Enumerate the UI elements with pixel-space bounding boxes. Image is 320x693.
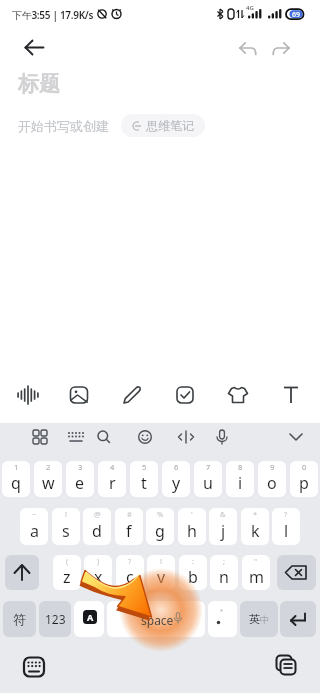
staticText: s xyxy=(62,520,70,542)
button[interactable] xyxy=(208,601,237,637)
button[interactable]: 0 xyxy=(290,461,318,497)
staticText: i xyxy=(238,472,243,494)
button[interactable] xyxy=(62,423,90,450)
button[interactable]: ( xyxy=(53,555,81,590)
button[interactable] xyxy=(131,423,159,450)
staticText: " xyxy=(254,556,258,566)
staticText: z xyxy=(63,566,71,588)
staticText: k xyxy=(251,520,260,542)
button[interactable] xyxy=(90,423,118,450)
button[interactable] xyxy=(270,651,302,683)
button[interactable] xyxy=(233,34,259,60)
button[interactable]: 9 xyxy=(258,461,286,497)
staticText: c xyxy=(126,566,134,588)
staticText: % xyxy=(157,509,164,519)
button[interactable] xyxy=(107,601,205,637)
button[interactable]: 123 xyxy=(39,601,71,637)
staticText: 8 xyxy=(238,462,243,472)
button[interactable]: ~ xyxy=(20,508,48,545)
button[interactable]: 5 xyxy=(130,461,158,497)
button[interactable] xyxy=(270,34,296,60)
button[interactable]: @ xyxy=(83,508,111,545)
staticText: j xyxy=(221,520,226,542)
staticText: q xyxy=(11,472,21,494)
button[interactable] xyxy=(112,375,152,415)
button[interactable]: ) xyxy=(84,555,112,590)
button[interactable] xyxy=(26,423,54,450)
button[interactable]: : xyxy=(179,555,207,590)
button[interactable]: ! xyxy=(52,508,80,545)
button[interactable]: 6 xyxy=(162,461,190,497)
button[interactable]: # xyxy=(115,508,143,545)
button[interactable] xyxy=(172,423,200,450)
button[interactable]: * xyxy=(241,508,269,545)
button[interactable]: ! xyxy=(147,555,175,590)
staticText: 中 xyxy=(260,614,269,625)
staticText: & xyxy=(220,509,226,519)
button[interactable]: ; xyxy=(210,555,238,590)
staticText: t xyxy=(141,472,147,494)
button[interactable]: & xyxy=(209,508,237,545)
button[interactable] xyxy=(280,601,316,637)
staticText: 9 xyxy=(270,462,275,472)
button[interactable] xyxy=(208,423,236,450)
button[interactable] xyxy=(18,31,50,63)
staticText: 2 xyxy=(46,462,51,472)
button[interactable]: 1 xyxy=(2,461,30,497)
button[interactable]: 符 xyxy=(3,601,36,637)
button[interactable] xyxy=(277,555,316,590)
button[interactable]: 2 xyxy=(34,461,62,497)
button[interactable] xyxy=(18,651,50,683)
button[interactable]: A xyxy=(74,601,104,637)
staticText: ! xyxy=(160,556,163,566)
staticText: n xyxy=(219,566,229,588)
staticText: p xyxy=(299,472,309,494)
staticText: v xyxy=(157,566,166,588)
button[interactable]: ? xyxy=(272,508,300,545)
staticText: 7 xyxy=(206,462,211,472)
staticText: 3 xyxy=(78,462,83,472)
staticText: ( xyxy=(66,556,69,566)
staticText: : xyxy=(192,556,195,566)
staticText: ) xyxy=(97,556,100,566)
staticText: ? xyxy=(128,556,132,566)
button[interactable]: 3 xyxy=(66,461,94,497)
staticText: ' xyxy=(191,509,193,519)
button[interactable]: 8 xyxy=(226,461,254,497)
staticText: h xyxy=(187,520,197,542)
button[interactable] xyxy=(59,375,99,415)
button[interactable]: % xyxy=(146,508,174,545)
staticText: @ xyxy=(94,509,101,519)
button[interactable]: 4 xyxy=(98,461,126,497)
staticText: ; xyxy=(223,556,226,566)
button[interactable] xyxy=(271,375,311,415)
button[interactable] xyxy=(8,375,48,415)
staticText: m xyxy=(249,566,264,588)
button[interactable] xyxy=(282,423,310,450)
staticText: x xyxy=(94,566,103,588)
staticText: 开始书写或创建 xyxy=(18,118,109,134)
button[interactable]: ' xyxy=(178,508,206,545)
button[interactable] xyxy=(218,375,258,415)
staticText: 下午3:55 | 17.9K/s xyxy=(12,8,94,22)
staticText: d xyxy=(92,520,102,542)
staticText: 5 xyxy=(142,462,147,472)
staticText: space xyxy=(141,612,174,628)
staticText: 思维笔记 xyxy=(146,118,194,133)
staticText: 符 xyxy=(13,611,26,627)
button[interactable] xyxy=(165,375,205,415)
staticText: g xyxy=(155,520,165,542)
button[interactable] xyxy=(5,555,39,590)
staticText: ? xyxy=(284,509,288,519)
staticText: l xyxy=(284,520,289,542)
staticText: 1 xyxy=(14,462,19,472)
button[interactable]: 思维笔记 xyxy=(121,114,205,137)
button[interactable]: " xyxy=(242,555,270,590)
staticText: f xyxy=(126,520,132,542)
button[interactable]: 7 xyxy=(194,461,222,497)
staticText: 4G xyxy=(246,4,254,12)
staticText: b xyxy=(188,566,198,588)
button[interactable]: ? xyxy=(116,555,144,590)
button[interactable]: 英 xyxy=(240,601,278,637)
staticText: o xyxy=(267,472,277,494)
